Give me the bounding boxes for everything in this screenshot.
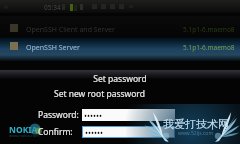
staticText: 05:34 — [44, 3, 61, 12]
staticText: www.52ijs.com — [178, 130, 214, 137]
button[interactable]: OpenSSH Client and Server — [0, 16, 240, 36]
button[interactable]: Back — [1, 2, 11, 12]
button[interactable]: OpenSSH Server — [0, 37, 240, 61]
staticText: •••••• — [85, 127, 104, 137]
staticText: Set password — [0, 73, 240, 85]
staticText: •••••• — [84, 110, 103, 121]
staticText: Password: — [38, 109, 79, 121]
staticText: Confirm: — [38, 126, 73, 138]
staticText: OpenSSH Server — [26, 43, 80, 53]
staticText: 5.1p1-6.maemo8 — [183, 43, 235, 52]
staticText: Set new root password — [54, 88, 145, 100]
staticText: 5.1p1-6.maemo8 — [183, 25, 235, 34]
staticText: 我爱打技术网 — [163, 117, 229, 131]
button[interactable]: •••••• — [82, 109, 175, 121]
staticText: www.nokia.com — [9, 133, 39, 138]
staticText: NOKIA — [9, 124, 38, 136]
button[interactable]: •••••• — [83, 127, 174, 137]
staticText: OpenSSH Client and Server — [26, 25, 115, 35]
